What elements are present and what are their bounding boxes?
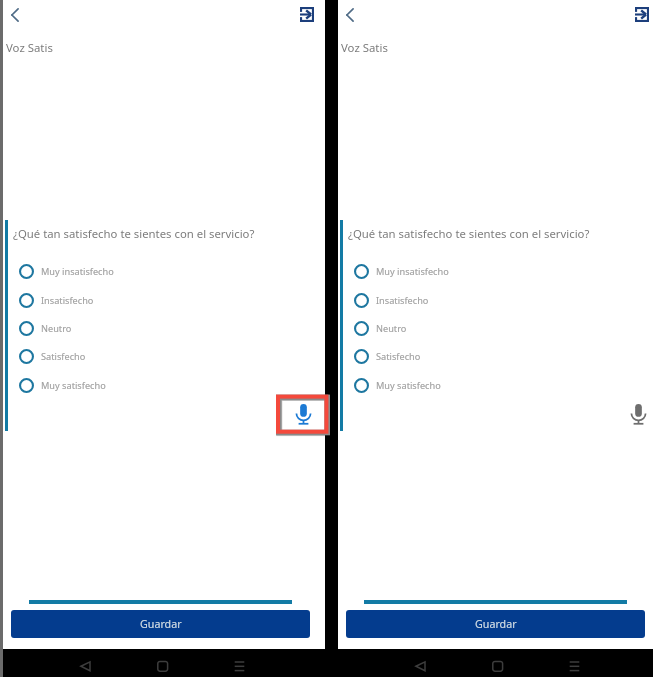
staticText: Voz Satis <box>341 40 388 56</box>
button[interactable]: Muy insatisfecho <box>19 263 229 279</box>
button[interactable]: Log in <box>632 4 652 24</box>
staticText: Neutro <box>376 322 407 335</box>
staticText: Insatisfecho <box>376 294 429 307</box>
staticText: ¿Qué tan satisfecho te sientes con el se… <box>13 226 255 241</box>
button[interactable]: Voice input <box>630 404 647 426</box>
button[interactable]: Neutro <box>19 320 229 336</box>
button[interactable]: Neutro <box>354 320 564 336</box>
staticText: Insatisfecho <box>41 294 94 307</box>
staticText: Guardar <box>475 617 517 632</box>
button[interactable]: Home <box>151 659 175 677</box>
button[interactable]: Insatisfecho <box>354 292 564 308</box>
staticText: Muy insatisfecho <box>376 265 449 278</box>
button[interactable]: Back <box>74 659 98 677</box>
button[interactable]: Muy insatisfecho <box>354 263 564 279</box>
button[interactable]: Back <box>409 659 433 677</box>
staticText: Muy satisfecho <box>41 379 106 392</box>
button[interactable]: Insatisfecho <box>19 292 229 308</box>
staticText: Satisfecho <box>41 350 86 363</box>
button[interactable]: Satisfecho <box>354 348 564 364</box>
staticText: Satisfecho <box>376 350 421 363</box>
staticText: Muy satisfecho <box>376 379 441 392</box>
button[interactable]: Muy satisfecho <box>19 377 229 393</box>
button[interactable]: Voice input <box>295 404 312 426</box>
staticText: Muy insatisfecho <box>41 265 114 278</box>
button[interactable]: Back <box>3 3 27 27</box>
button[interactable]: Guardar <box>11 610 310 638</box>
staticText: ¿Qué tan satisfecho te sientes con el se… <box>348 226 590 241</box>
button[interactable]: Home <box>486 659 510 677</box>
button[interactable]: Recent apps <box>563 659 587 677</box>
staticText: Voz Satis <box>6 40 53 56</box>
button[interactable]: Back <box>338 3 362 27</box>
staticText: Neutro <box>41 322 72 335</box>
button[interactable]: Recent apps <box>228 659 252 677</box>
staticText: Guardar <box>140 617 182 632</box>
button[interactable]: Guardar <box>346 610 645 638</box>
button[interactable]: Satisfecho <box>19 348 229 364</box>
button[interactable]: Muy satisfecho <box>354 377 564 393</box>
button[interactable]: Log in <box>297 4 317 24</box>
